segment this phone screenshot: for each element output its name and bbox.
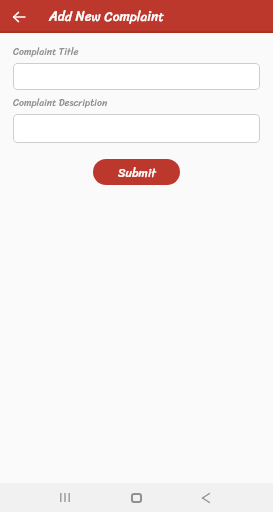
staticText: Complaint Title: [13, 43, 79, 60]
button[interactable]: Back: [0, 0, 38, 33]
button[interactable]: Submit: [93, 159, 180, 185]
button[interactable]: Home: [114, 483, 158, 512]
button[interactable]: Recents: [43, 483, 87, 512]
button[interactable]: Back: [184, 483, 228, 512]
staticText: Complaint Description: [13, 94, 108, 111]
staticText: Add New Complaint: [49, 5, 165, 29]
button[interactable]: [13, 63, 260, 90]
staticText: Submit: [118, 162, 156, 183]
button[interactable]: [13, 114, 260, 143]
